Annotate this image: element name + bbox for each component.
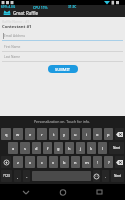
staticText: Next [113,146,120,150]
button[interactable]: . [102,170,109,182]
button[interactable]: n [71,156,80,168]
button[interactable]: x [25,156,35,168]
staticText: m [85,160,89,165]
staticText: j [80,146,82,151]
staticText: c [41,160,43,165]
staticText: a [12,146,15,151]
staticText: y [63,132,66,137]
staticText: n [74,160,77,165]
staticText: Great Raffle [13,10,39,16]
staticText: Next [114,174,121,178]
staticText: Raffle Name - #1 [2,19,30,24]
staticText: w [16,132,20,137]
staticText: First Name [4,45,21,49]
button[interactable]: j [76,142,85,154]
staticText: CPU 11% [33,5,48,10]
button[interactable]: p [104,128,113,140]
button[interactable]: q [1,128,11,140]
button[interactable]: , [14,170,21,182]
staticText: v [52,160,55,165]
button[interactable]: 69% 4.0G [0,5,125,17]
other: Backspace [116,160,123,165]
staticText: s [24,146,26,151]
button[interactable]: SUBMIT [48,65,78,73]
staticText: b [63,160,66,165]
button[interactable]: Next [109,142,124,154]
staticText: d [35,146,38,151]
other: Backspace [116,132,123,137]
button[interactable]: Recents [88,184,110,200]
button[interactable]: h [65,142,74,154]
button[interactable]: Next [111,170,124,182]
button[interactable]: a [8,142,18,154]
staticText: Contestant #1 [2,24,32,30]
staticText: o [96,132,99,137]
button[interactable]: Backspace [115,156,124,168]
staticText: z [17,160,19,165]
staticText: k [90,146,93,151]
staticText: l [102,146,104,151]
button[interactable]: Emoji [93,170,100,182]
staticText: f [47,146,49,151]
button[interactable]: k [87,142,96,154]
button[interactable]: f [43,142,52,154]
staticText: q [5,132,8,137]
button[interactable]: v [49,156,58,168]
staticText: Email Address [4,34,26,38]
staticText: h [68,146,71,151]
button[interactable]: d [32,142,41,154]
button[interactable]: m [82,156,91,168]
staticText: 69% 4.0G [1,5,16,9]
staticText: ? [108,160,110,165]
button[interactable]: b [60,156,69,168]
staticText: u [74,132,77,137]
button[interactable]: ? [104,156,113,168]
staticText: SUBMIT [55,67,71,72]
staticText: 31.9C [68,5,77,9]
button[interactable]: o [93,128,102,140]
button[interactable]: Backspace [115,128,124,140]
staticText: g [57,146,60,151]
staticText: . [105,174,107,179]
staticText: ?123 [3,174,10,178]
button[interactable]: - [23,170,30,182]
staticText: ! [97,160,99,165]
button[interactable]: c [37,156,47,168]
staticText: Personalization on. Touch for info. [34,119,91,124]
button[interactable]: w [13,128,23,140]
button[interactable]: r [37,128,47,140]
staticText: e [29,132,32,137]
staticText: p [107,132,110,137]
button[interactable]: Home [52,184,74,200]
button[interactable]: ! [93,156,102,168]
other: Shift [4,160,9,165]
button[interactable]: i [82,128,91,140]
button[interactable]: u [71,128,80,140]
staticText: t [53,132,55,137]
staticText: Last Name [4,55,20,59]
button[interactable]: t [49,128,58,140]
button[interactable]: g [54,142,63,154]
button[interactable]: ?123 [1,170,12,182]
button[interactable]: Back [15,184,37,200]
button[interactable]: e [25,128,35,140]
staticText: - [26,174,28,179]
button[interactable]: l [98,142,107,154]
button[interactable]: Personalization on. Touch for info. [0,116,125,127]
staticText: i [86,132,88,137]
other: Emoji [94,174,99,179]
staticText: r [41,132,43,137]
button[interactable]: s [20,142,30,154]
staticText: , [17,174,19,179]
staticText: x [29,160,32,165]
button[interactable]: y [60,128,69,140]
button[interactable]: z [13,156,23,168]
button[interactable]: Shift [1,156,11,168]
